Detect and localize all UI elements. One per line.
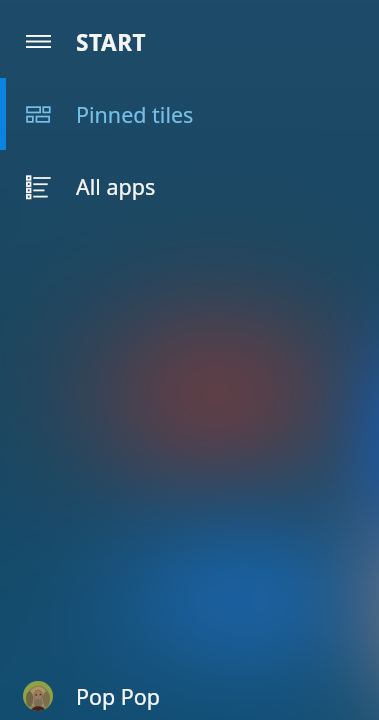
staticText: Pinned tiles [76, 100, 194, 129]
button[interactable]: Pop Pop [0, 672, 379, 720]
staticText: All apps [76, 172, 156, 201]
button[interactable]: Pinned tiles [0, 78, 379, 150]
staticText: START [76, 27, 147, 58]
button[interactable]: All apps [0, 150, 379, 222]
button[interactable]: Open navigation menu [0, 0, 379, 78]
staticText: Pop Pop [76, 682, 161, 711]
